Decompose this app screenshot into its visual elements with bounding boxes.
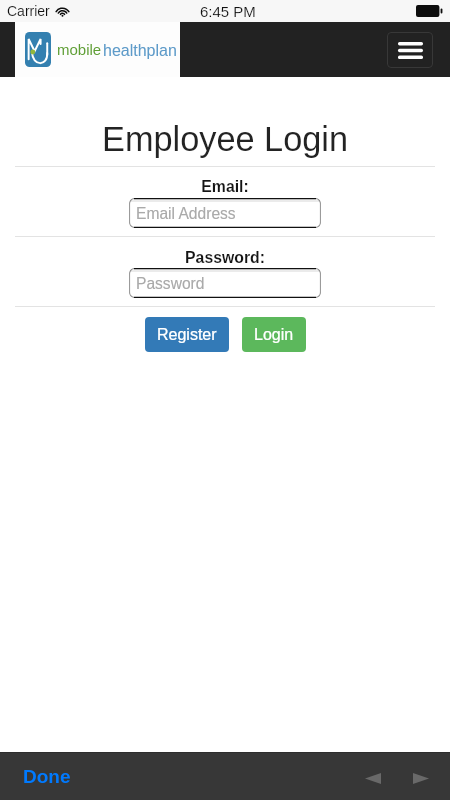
button[interactable]: Login [242,317,306,352]
button[interactable]: Register [145,317,229,352]
staticText: Email: [0,178,450,196]
button[interactable]: Next field [405,762,437,794]
staticText: 6:45 PM [200,3,256,20]
staticText: Done [23,766,71,787]
button[interactable]: Menu [387,32,433,68]
button[interactable]: Done [23,766,71,787]
staticText: Email Address [136,205,236,222]
button[interactable]: Password [129,268,321,298]
staticText: Carrier [7,3,50,19]
staticText: Login [254,326,294,344]
staticText: Employee Login [0,120,450,158]
staticText: healthplan [103,42,177,60]
staticText: mobile [57,41,102,58]
button[interactable]: mobile healthplan home [15,22,180,77]
staticText: Password [136,275,205,292]
staticText: Password: [0,249,450,267]
button[interactable]: Previous field [357,762,389,794]
staticText: Register [157,326,217,344]
button[interactable]: Email Address [129,198,321,228]
